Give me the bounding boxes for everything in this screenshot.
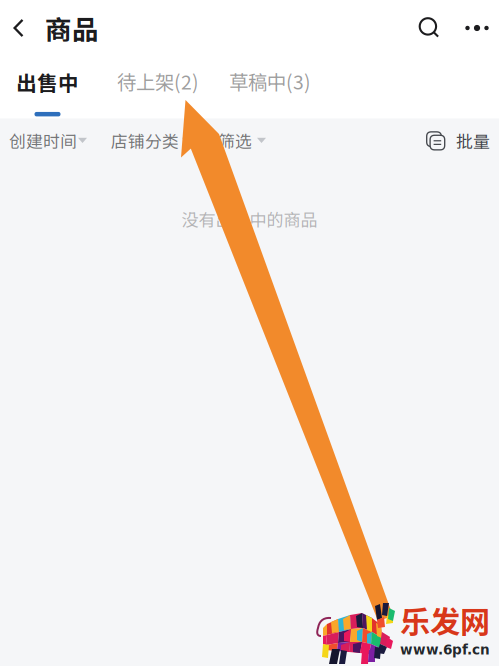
button[interactable]: 草稿中(3): [229, 67, 311, 95]
staticText: 商品: [45, 9, 99, 47]
staticText: 创建时间: [9, 128, 77, 153]
staticText: www.6pf.cn: [400, 642, 490, 658]
staticText: 草稿中(3): [229, 67, 311, 95]
button[interactable]: 创建时间: [0, 118, 111, 162]
staticText: 店铺分类: [111, 128, 179, 153]
button[interactable]: 出售中: [0, 67, 117, 116]
staticText: 待上架(2): [117, 67, 199, 95]
staticText: 出售中: [16, 67, 79, 97]
button[interactable]: 待上架(2): [117, 67, 229, 95]
button[interactable]: More: [455, 0, 499, 56]
staticText: 筛选: [218, 128, 252, 153]
button[interactable]: 店铺分类: [111, 118, 218, 162]
button[interactable]: 筛选: [218, 118, 266, 162]
button[interactable]: Search: [404, 0, 455, 56]
button[interactable]: Back: [0, 0, 45, 56]
staticText: 乐发网: [400, 598, 490, 642]
staticText: 批量: [456, 128, 490, 153]
staticText: 没有出售中的商品: [181, 206, 317, 231]
button[interactable]: 批量: [426, 118, 499, 162]
